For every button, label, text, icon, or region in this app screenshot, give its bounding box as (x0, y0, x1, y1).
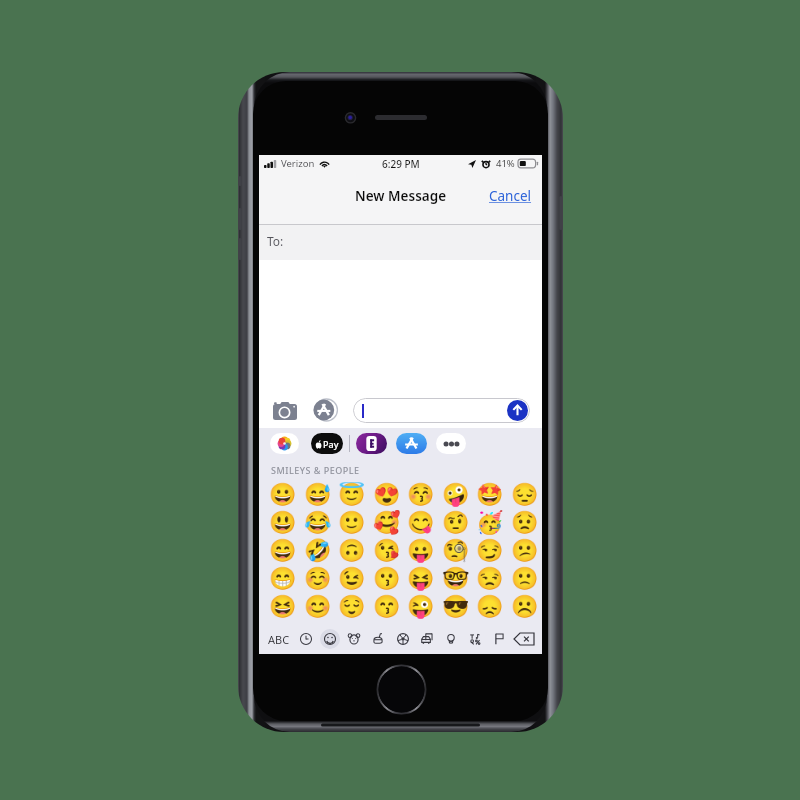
staticText: 🙁 (511, 566, 539, 592)
button[interactable]: 🙁 (511, 565, 539, 593)
button[interactable]: Smileys and people (320, 629, 340, 649)
button[interactable]: 🙂 (338, 509, 366, 537)
button[interactable]: 😂 (304, 509, 332, 537)
staticText: 😅 (304, 482, 332, 508)
button[interactable]: Delete (513, 631, 535, 647)
staticText: 6:29 PM (382, 157, 420, 171)
staticText: 😃 (269, 510, 297, 536)
button[interactable]: 🤨 (442, 509, 470, 537)
button[interactable]: 😗 (373, 565, 401, 593)
button[interactable]: 🙃 (338, 537, 366, 565)
staticText: 😕 (511, 538, 539, 564)
button[interactable]: 😔 (511, 481, 539, 509)
staticText: 😊 (304, 594, 332, 620)
button[interactable]: 😒 (476, 565, 504, 593)
button[interactable]: 🤣 (304, 537, 332, 565)
button[interactable]: 🥰 (373, 509, 401, 537)
button[interactable]: Photos (270, 433, 299, 454)
button[interactable]: 😏 (476, 537, 504, 565)
button[interactable]: 🥳 (476, 509, 504, 537)
button[interactable]: 😝 (407, 565, 435, 593)
button[interactable]: 😇 (338, 481, 366, 509)
button[interactable]: Food and drink (368, 629, 388, 649)
button[interactable]: 😊 (304, 593, 332, 621)
button[interactable]: Symbols (465, 629, 485, 649)
staticText: 🤩 (476, 482, 504, 508)
staticText: 😁 (269, 566, 297, 592)
button[interactable]: 😃 (269, 509, 297, 537)
staticText: ABC (268, 632, 290, 647)
staticText: 41% (496, 157, 515, 170)
button[interactable]: 😋 (407, 509, 435, 537)
button[interactable]: Travel and places (417, 629, 437, 649)
button[interactable]: ABC (266, 632, 292, 647)
staticText: 😍 (373, 482, 401, 508)
staticText: 😜 (407, 594, 435, 620)
staticText: 😚 (407, 482, 435, 508)
staticText: 😉 (338, 566, 366, 592)
button[interactable]: 🤪 (442, 481, 470, 509)
staticText: 😗 (373, 566, 401, 592)
button[interactable]: Flags (489, 629, 509, 649)
staticText: 😄 (269, 538, 297, 564)
button[interactable]: 🤩 (476, 481, 504, 509)
staticText: 🤓 (442, 566, 470, 592)
button[interactable]: Cancel (489, 187, 532, 205)
button[interactable]: 🧐 (442, 537, 470, 565)
button[interactable]: App Store (313, 398, 337, 422)
staticText: 😟 (511, 510, 539, 536)
button[interactable]: 😎 (442, 593, 470, 621)
staticText: 😏 (476, 538, 504, 564)
button[interactable]: Animals and nature (344, 629, 364, 649)
staticText: ☺️ (304, 566, 332, 592)
button[interactable]: App Store (396, 433, 427, 454)
staticText: ☹️ (511, 594, 539, 620)
button[interactable]: 😞 (476, 593, 504, 621)
button[interactable]: 😌 (338, 593, 366, 621)
button[interactable]: 🤓 (442, 565, 470, 593)
staticText: 😀 (269, 482, 297, 508)
button[interactable]: Recents (296, 629, 316, 649)
button[interactable]: More apps (436, 433, 466, 454)
button[interactable]: To: (259, 225, 542, 260)
button[interactable]: 😚 (407, 481, 435, 509)
button[interactable]: 😍 (373, 481, 401, 509)
button[interactable]: Apple Pay (311, 433, 343, 454)
staticText: 😆 (269, 594, 297, 620)
staticText: 🤨 (442, 510, 470, 536)
button[interactable]: 😛 (407, 537, 435, 565)
staticText: 🤣 (304, 538, 332, 564)
staticText: 🥰 (373, 510, 401, 536)
staticText: 😋 (407, 510, 435, 536)
button[interactable]: 😕 (511, 537, 539, 565)
button[interactable]: Camera (273, 398, 297, 422)
button[interactable]: ☺️ (304, 565, 332, 593)
button[interactable]: 😄 (269, 537, 297, 565)
staticText: New Message (355, 187, 447, 205)
staticText: 😘 (373, 538, 401, 564)
button[interactable]: 😀 (269, 481, 297, 509)
button[interactable]: Send (353, 398, 530, 423)
button[interactable]: 😜 (407, 593, 435, 621)
button[interactable]: Send (507, 400, 528, 421)
staticText: 🤪 (442, 482, 470, 508)
button[interactable]: 😙 (373, 593, 401, 621)
button[interactable]: App (356, 433, 387, 454)
staticText: Pay (323, 438, 339, 450)
staticText: 🙂 (338, 510, 366, 536)
staticText: 😛 (407, 538, 435, 564)
button[interactable]: 😅 (304, 481, 332, 509)
staticText: 🥳 (476, 510, 504, 536)
button[interactable]: ☹️ (511, 593, 539, 621)
button[interactable]: Objects (441, 629, 461, 649)
staticText: 😎 (442, 594, 470, 620)
button[interactable]: 😉 (338, 565, 366, 593)
button[interactable]: 😆 (269, 593, 297, 621)
staticText: 😝 (407, 566, 435, 592)
staticText: Verizon (281, 157, 315, 170)
button[interactable]: 😟 (511, 509, 539, 537)
button[interactable]: 😁 (269, 565, 297, 593)
staticText: 😔 (511, 482, 539, 508)
button[interactable]: 😘 (373, 537, 401, 565)
button[interactable]: Activity (393, 629, 413, 649)
